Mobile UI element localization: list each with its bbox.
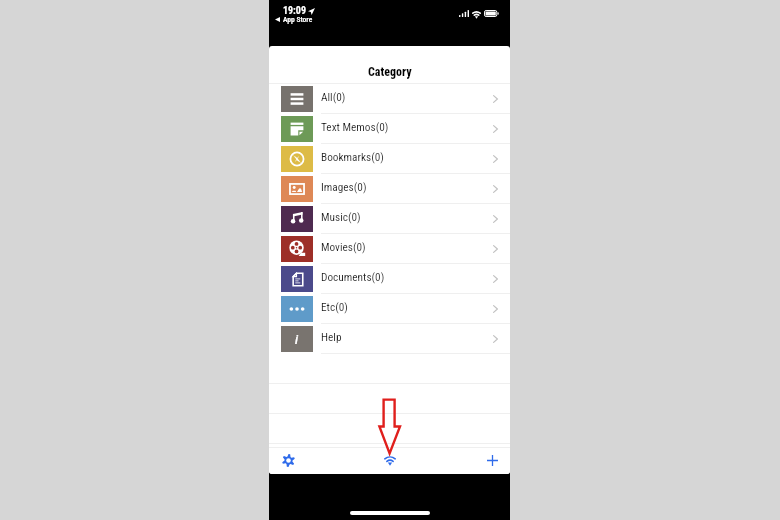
button[interactable]: All(0) bbox=[269, 84, 510, 114]
button[interactable]: Documents(0) bbox=[269, 264, 510, 294]
staticText: Etc(0) bbox=[321, 301, 348, 314]
staticText: App Store bbox=[283, 15, 313, 24]
button[interactable]: Images(0) bbox=[269, 174, 510, 204]
staticText: Text Memos(0) bbox=[321, 121, 389, 134]
staticText: i bbox=[295, 332, 299, 347]
button[interactable]: i bbox=[269, 324, 510, 354]
button[interactable]: Music(0) bbox=[269, 204, 510, 234]
staticText: Help bbox=[321, 331, 342, 344]
staticText: 19:09 bbox=[283, 5, 306, 17]
staticText: Bookmarks(0) bbox=[321, 151, 384, 164]
staticText: Movies(0) bbox=[321, 241, 366, 254]
button[interactable]: Settings bbox=[276, 447, 300, 474]
button[interactable]: Add bbox=[480, 447, 504, 474]
button[interactable]: Wi-Fi bbox=[378, 447, 402, 474]
button[interactable]: Bookmarks(0) bbox=[269, 144, 510, 174]
staticText: Category bbox=[368, 65, 412, 79]
staticText: Images(0) bbox=[321, 181, 367, 194]
staticText: All(0) bbox=[321, 91, 346, 104]
button[interactable]: Movies(0) bbox=[269, 234, 510, 264]
button[interactable]: Etc(0) bbox=[269, 294, 510, 324]
staticText: Documents(0) bbox=[321, 271, 385, 284]
staticText: Music(0) bbox=[321, 211, 361, 224]
button[interactable]: Text Memos(0) bbox=[269, 114, 510, 144]
